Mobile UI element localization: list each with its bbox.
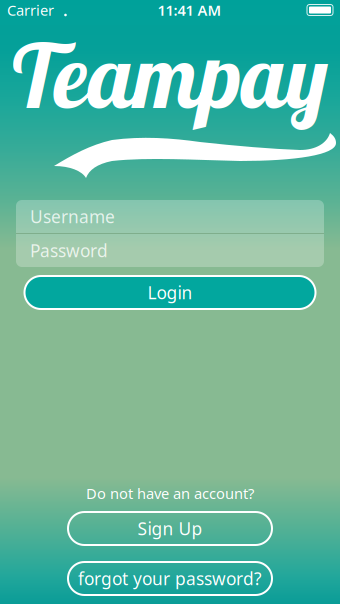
staticText: Teampay: [12, 20, 327, 130]
staticText: 11:41 AM: [157, 0, 221, 20]
staticText: Username: [30, 205, 115, 228]
staticText: Do not have an account?: [86, 483, 254, 503]
staticText: Password: [30, 239, 108, 262]
staticText: forgot your password?: [78, 567, 262, 590]
button[interactable]: Sign Up: [68, 512, 272, 545]
button[interactable]: forgot your password?: [68, 562, 272, 595]
staticText: Sign Up: [137, 517, 202, 540]
button[interactable]: Login: [24, 276, 315, 309]
staticText: Login: [147, 281, 192, 304]
staticText: Carrier: [7, 0, 54, 20]
